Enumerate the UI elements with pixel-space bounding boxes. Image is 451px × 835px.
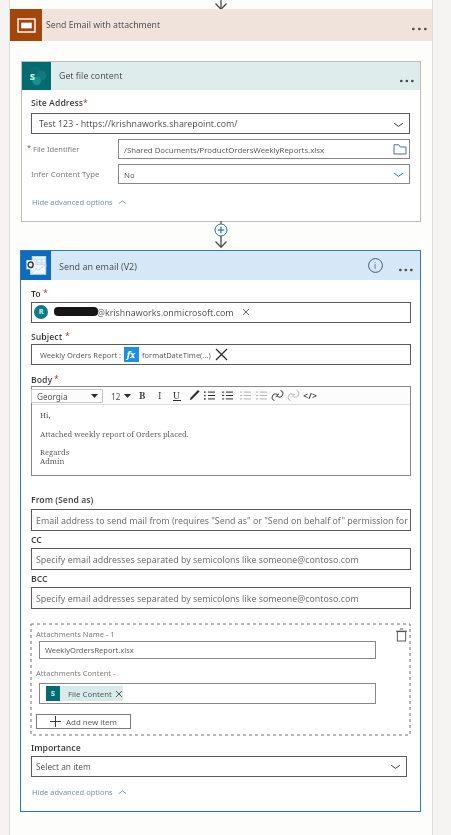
staticText: Weekly Orders Report :: [40, 350, 122, 360]
staticText: Hide advanced options: [32, 197, 113, 207]
staticText: Send Email with attachment: [46, 19, 161, 31]
button[interactable]: [118, 139, 410, 159]
button[interactable]: [31, 509, 411, 531]
staticText: WeeklyOrdersReport.xlsx: [45, 645, 134, 655]
staticText: *: [27, 142, 32, 152]
button[interactable]: [10, 9, 432, 41]
staticText: Attachments Content -: [36, 668, 116, 678]
button[interactable]: [118, 164, 410, 184]
staticText: To: [31, 288, 41, 300]
button[interactable]: [39, 641, 376, 659]
button[interactable]: More commands: [394, 259, 419, 281]
staticText: @krishnaworks.onmicrosoft.com: [97, 307, 234, 319]
staticText: Attached weekly report of Orders placed.: [40, 429, 189, 439]
staticText: Subject: [31, 331, 63, 343]
staticText: 12: [111, 391, 121, 402]
staticText: *: [54, 373, 59, 385]
staticText: /Shared Documents/ProductOrdersWeeklyRep…: [124, 145, 325, 156]
staticText: Email address to send mail from (require…: [36, 515, 408, 527]
staticText: *: [83, 97, 88, 109]
staticText: BCC: [31, 573, 48, 585]
staticText: Infer Content Type: [31, 169, 100, 180]
staticText: *: [65, 330, 70, 342]
staticText: Importance: [31, 742, 81, 754]
staticText: formatDateTime(...): [142, 350, 211, 360]
staticText: File Content: [68, 689, 112, 700]
staticText: S: [51, 689, 55, 699]
button[interactable]: [31, 756, 407, 777]
button[interactable]: Hide advanced options: [32, 787, 127, 797]
button[interactable]: [21, 251, 420, 280]
staticText: Send an email (V2): [59, 260, 137, 272]
staticText: Site Address: [31, 97, 84, 109]
staticText: S: [30, 70, 35, 82]
button[interactable]: [31, 389, 103, 403]
button[interactable]: [31, 548, 411, 570]
staticText: Add new item: [66, 717, 117, 728]
staticText: </>: [303, 389, 318, 401]
button[interactable]: [31, 302, 411, 323]
staticText: Admin: [40, 456, 65, 466]
staticText: Test 123 - https://krishnaworks.sharepoi…: [39, 118, 238, 130]
button[interactable]: [39, 683, 376, 704]
staticText: From (Send as): [31, 494, 94, 506]
staticText: B: [139, 389, 146, 402]
button[interactable]: More commands: [395, 70, 420, 92]
staticText: Body: [31, 374, 53, 386]
staticText: Select an item: [36, 761, 91, 772]
button[interactable]: Hide advanced options: [32, 197, 127, 207]
staticText: fx: [127, 349, 136, 360]
staticText: CC: [31, 534, 42, 546]
staticText: No: [124, 170, 135, 181]
staticText: R: [39, 307, 44, 317]
button[interactable]: [36, 714, 131, 729]
staticText: I: [158, 389, 162, 402]
staticText: U: [173, 389, 180, 402]
button[interactable]: Insert a new step: [206, 221, 236, 248]
staticText: Georgia: [37, 391, 68, 402]
staticText: Hi,: [40, 410, 51, 420]
staticText: File Identifier: [33, 144, 80, 154]
button[interactable]: [31, 587, 411, 609]
button[interactable]: [31, 344, 411, 365]
button[interactable]: [31, 113, 410, 134]
staticText: Specify email addresses separated by sem…: [36, 554, 359, 566]
staticText: Attachments Name - 1: [36, 629, 115, 639]
staticText: Hide advanced options: [32, 787, 113, 797]
staticText: *: [43, 287, 48, 299]
button[interactable]: Info: [368, 258, 383, 273]
button[interactable]: More commands: [407, 18, 433, 40]
staticText: i: [374, 260, 377, 271]
button[interactable]: [22, 62, 420, 90]
staticText: Get file content: [59, 70, 123, 82]
staticText: Specify email addresses separated by sem…: [36, 593, 359, 605]
staticText: Regards: [40, 447, 70, 457]
